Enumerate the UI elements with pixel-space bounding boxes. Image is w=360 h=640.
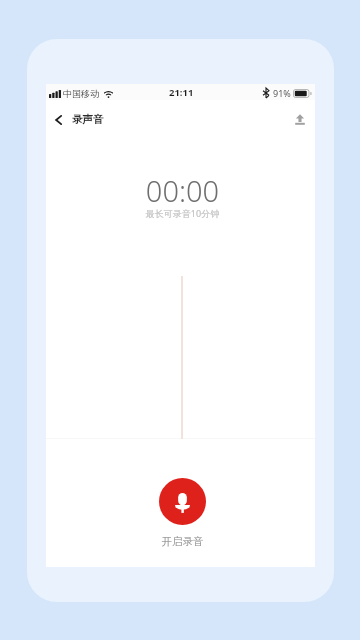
button[interactable]: Back (49, 106, 110, 133)
staticText: 00:00 (48, 171, 317, 210)
staticText: 录声音 (72, 113, 104, 126)
staticText: 中国移动 (63, 88, 99, 99)
button[interactable]: Upload (291, 110, 309, 128)
staticText: 最长可录音10分钟 (48, 207, 317, 219)
button[interactable]: Start recording (159, 478, 206, 525)
staticText: 开启录音 (48, 535, 317, 548)
staticText: 21:11 (169, 86, 194, 99)
staticText: 91% (273, 87, 291, 99)
